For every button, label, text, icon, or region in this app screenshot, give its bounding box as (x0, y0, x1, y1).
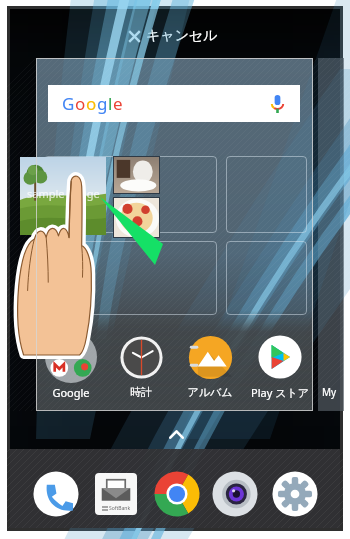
button[interactable]: Open app drawer (169, 430, 184, 439)
staticText: Play ストア (251, 385, 309, 400)
staticText: My (322, 385, 337, 399)
button[interactable]: G (48, 85, 300, 122)
staticText: SoftBank (109, 505, 131, 512)
button[interactable]: アルバム (176, 330, 244, 402)
staticText: e (113, 92, 123, 115)
button[interactable]: Settings (272, 471, 318, 517)
button[interactable]: Google (37, 330, 105, 402)
button[interactable]: Mail (93, 471, 139, 517)
staticText: 時計 (130, 385, 152, 399)
staticText: o (86, 92, 97, 115)
button[interactable]: Phone (33, 471, 79, 517)
staticText: Google (52, 385, 90, 400)
staticText: アルバム (187, 385, 233, 399)
staticText: g (97, 92, 108, 115)
button[interactable]: キャンセル (122, 21, 224, 51)
staticText: キャンセル (146, 27, 218, 45)
staticText: l (108, 92, 113, 115)
staticText: o (75, 92, 86, 115)
button[interactable]: Chrome (154, 471, 200, 517)
staticText: sample image (27, 186, 100, 201)
button[interactable]: Play ストア (246, 330, 314, 402)
staticText: G (62, 92, 75, 115)
button[interactable]: 時計 (107, 330, 175, 402)
button[interactable]: Camera (212, 471, 258, 517)
